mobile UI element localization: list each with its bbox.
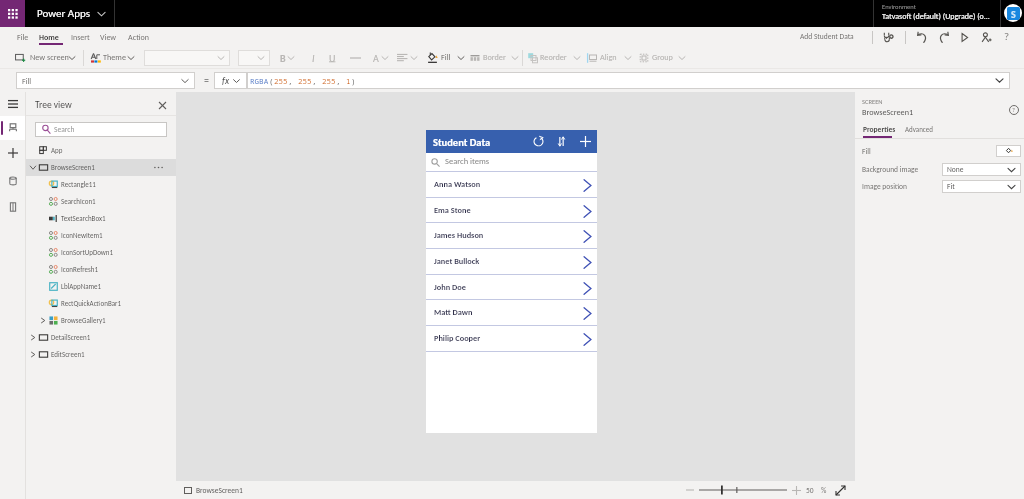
button[interactable]: U: [327, 51, 337, 65]
button[interactable]: Reorder: [540, 52, 567, 64]
button[interactable]: Matt Dawn: [426, 300, 597, 326]
button[interactable]: Redo: [936, 30, 950, 44]
button[interactable]: A: [371, 51, 381, 65]
button[interactable]: Function: [214, 72, 247, 89]
button[interactable]: Refresh: [529, 130, 547, 153]
button[interactable]: Tree view: [35, 99, 72, 112]
button[interactable]: John Doe: [426, 275, 597, 301]
button[interactable]: Action: [123, 27, 144, 47]
button[interactable]: Expand: [573, 55, 581, 61]
button[interactable]: Expand: [678, 55, 686, 61]
button[interactable]: Fill: [16, 72, 195, 89]
button[interactable]: Anna Watson: [426, 172, 597, 198]
button[interactable]: Help: [1007, 103, 1020, 116]
button[interactable]: Image position: [942, 180, 1021, 193]
button[interactable]: IconSortUpDown1: [26, 244, 176, 261]
button[interactable]: Help: [1000, 30, 1013, 43]
button[interactable]: Tree view: [0, 116, 25, 140]
button[interactable]: Account: [1004, 4, 1022, 22]
button[interactable]: Share: [979, 30, 993, 44]
button[interactable]: Expand: [410, 55, 418, 61]
button[interactable]: Add Student Data: [800, 32, 854, 44]
button[interactable]: B: [278, 51, 288, 65]
button[interactable]: Fill colour: [996, 145, 1021, 157]
button[interactable]: Toolbar action: [91, 53, 101, 63]
button[interactable]: Search items: [426, 153, 597, 171]
button[interactable]: LblAppName1: [26, 278, 176, 295]
button[interactable]: DetailScreen1: [26, 329, 176, 346]
button[interactable]: Theme: [103, 52, 126, 64]
button[interactable]: Ema Stone: [426, 198, 597, 224]
button[interactable]: Insert: [0, 140, 25, 166]
button[interactable]: BrowseScreen1: [26, 159, 176, 176]
button[interactable]: EditScreen1: [26, 346, 176, 363]
button[interactable]: Toolbar action: [470, 53, 480, 63]
button[interactable]: Search tree: [35, 122, 167, 137]
button[interactable]: RectQuickActionBar1: [26, 295, 176, 312]
button[interactable]: RGBA: [247, 72, 1010, 89]
button[interactable]: I: [308, 51, 318, 65]
button[interactable]: Philip Cooper: [426, 326, 597, 352]
button[interactable]: Toolbar action: [427, 52, 438, 63]
button[interactable]: Expand: [68, 55, 76, 61]
button[interactable]: Fill: [441, 52, 451, 64]
staticText: John Doe: [434, 282, 466, 292]
button[interactable]: Toolbar action: [15, 52, 26, 63]
button[interactable]: Expand: [624, 55, 632, 61]
button[interactable]: Preview the app: [957, 30, 971, 44]
button[interactable]: Toolbar action: [528, 53, 538, 63]
button[interactable]: Strikethrough: [348, 51, 362, 65]
button[interactable]: Background image: [942, 163, 1021, 176]
button[interactable]: James Hudson: [426, 223, 597, 249]
button[interactable]: Expand: [511, 55, 519, 61]
button[interactable]: IconNewItem1: [26, 227, 176, 244]
button[interactable]: Check app checker: [881, 30, 895, 44]
button[interactable]: Zoom slider: [699, 485, 787, 495]
button[interactable]: View: [95, 27, 112, 47]
button[interactable]: Environment: [873, 0, 1000, 27]
button[interactable]: Media: [0, 194, 25, 220]
button[interactable]: Add item: [576, 130, 594, 153]
button[interactable]: Menu: [0, 92, 25, 116]
button[interactable]: Group: [652, 52, 673, 64]
button[interactable]: Home: [34, 27, 58, 47]
button[interactable]: BrowseGallery1: [26, 312, 176, 329]
button[interactable]: Toolbar action: [397, 52, 408, 63]
button[interactable]: Expand: [381, 55, 389, 61]
button[interactable]: Expand: [287, 55, 295, 61]
button[interactable]: Properties: [863, 125, 896, 138]
button[interactable]: App launcher: [0, 0, 25, 27]
button[interactable]: More options: [152, 163, 164, 172]
button[interactable]: Undo: [915, 30, 929, 44]
button[interactable]: Power Apps: [30, 0, 110, 27]
staticText: 255: [322, 76, 336, 86]
button[interactable]: BrowseScreen1: [184, 481, 243, 499]
button[interactable]: Sort: [552, 130, 570, 153]
staticText: IconNewItem1: [61, 231, 103, 240]
button[interactable]: Expand: [457, 55, 465, 61]
button[interactable]: TextSearchBox1: [26, 210, 176, 227]
button[interactable]: Zoom out: [685, 486, 695, 494]
button[interactable]: Data: [0, 168, 25, 194]
button[interactable]: Toolbar action: [587, 53, 597, 63]
button[interactable]: Fit to screen: [835, 485, 846, 496]
staticText: Fill: [22, 76, 32, 86]
button[interactable]: Janet Bullock: [426, 249, 597, 275]
button[interactable]: Rectangle11: [26, 176, 176, 193]
button[interactable]: Toolbar action: [639, 53, 649, 63]
button[interactable]: Expand: [127, 55, 135, 61]
button[interactable]: Close tree view: [156, 99, 168, 111]
button[interactable]: IconRefresh1: [26, 261, 176, 278]
button[interactable]: Insert: [66, 27, 85, 47]
button[interactable]: Zoom in: [792, 486, 801, 495]
button[interactable]: Dropdown: [144, 50, 230, 66]
staticText: Fill: [862, 147, 871, 156]
button[interactable]: Advanced: [905, 125, 933, 138]
button[interactable]: SearchIcon1: [26, 193, 176, 210]
button[interactable]: Dropdown: [238, 50, 270, 66]
button[interactable]: File: [12, 27, 24, 47]
button[interactable]: Align: [600, 52, 617, 64]
button[interactable]: Border: [483, 52, 506, 64]
button[interactable]: App: [26, 142, 176, 159]
button[interactable]: New screen: [30, 52, 69, 64]
